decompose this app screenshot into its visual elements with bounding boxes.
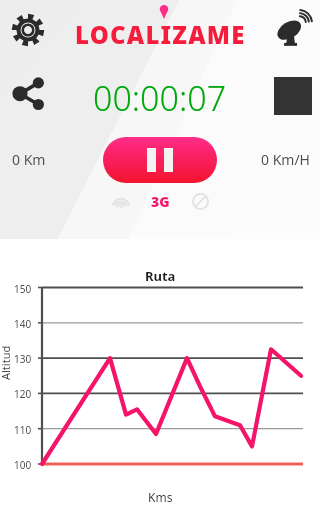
staticText: LOCALIZAME [75, 18, 246, 51]
button[interactable]: Wi-Fi [111, 191, 131, 211]
button[interactable]: Share [6, 70, 52, 116]
button[interactable]: No signal [190, 191, 210, 211]
staticText: Kms [148, 489, 173, 505]
staticText: Ruta [145, 267, 176, 285]
staticText: 110 [14, 423, 32, 437]
staticText: 100 [14, 458, 32, 472]
button[interactable]: GPS satellite [270, 8, 314, 52]
staticText: 3G [151, 192, 170, 211]
button[interactable]: 3G [151, 192, 170, 211]
button[interactable]: Pause [103, 137, 217, 183]
staticText: 0 Km [12, 150, 46, 169]
staticText: Altitud [0, 345, 13, 380]
staticText: 130 [14, 352, 32, 366]
staticText: 00:00:07 [93, 75, 227, 121]
staticText: 0 Km/H [261, 150, 310, 169]
staticText: 120 [14, 387, 32, 401]
staticText: 150 [14, 282, 32, 296]
button[interactable]: Settings [8, 10, 48, 50]
staticText: 140 [14, 317, 32, 331]
